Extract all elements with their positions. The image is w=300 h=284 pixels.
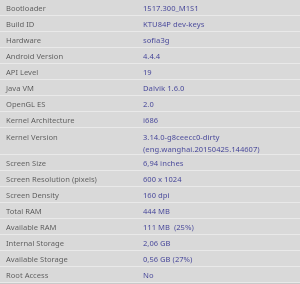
- staticText: Kernel Architecture: [6, 115, 75, 125]
- staticText: Bootloader: [6, 3, 46, 13]
- button[interactable]: Screen Size: [0, 155, 300, 171]
- staticText: 0,56 GB (27%): [143, 254, 193, 264]
- button[interactable]: Build ID: [0, 16, 300, 32]
- staticText: Android Version: [6, 51, 64, 61]
- staticText: Available RAM: [6, 222, 57, 232]
- button[interactable]: Kernel Architecture: [0, 112, 300, 128]
- button[interactable]: Android Version: [0, 48, 300, 64]
- staticText: Kernel Version: [6, 132, 58, 142]
- button[interactable]: Available Storage: [0, 251, 300, 267]
- staticText: 3.14.0-g8ceecc0-dirty: [143, 132, 220, 142]
- button[interactable]: Root Access: [0, 267, 300, 283]
- staticText: sofia3g: [143, 35, 170, 45]
- button[interactable]: Kernel Version: [0, 128, 300, 155]
- staticText: Screen Density: [6, 190, 59, 200]
- button[interactable]: Bootloader: [0, 0, 300, 16]
- staticText: Hardware: [6, 35, 42, 45]
- button[interactable]: Internal Storage: [0, 235, 300, 251]
- button[interactable]: Hardware: [0, 32, 300, 48]
- button[interactable]: Screen Density: [0, 187, 300, 203]
- staticText: Build ID: [6, 19, 35, 29]
- staticText: 6,94 inches: [143, 158, 184, 168]
- staticText: 4.4.4: [143, 51, 161, 61]
- staticText: 111 MB (25%): [143, 222, 194, 232]
- button[interactable]: Available RAM: [0, 219, 300, 235]
- staticText: Dalvik 1.6.0: [143, 83, 185, 93]
- staticText: Internal Storage: [6, 238, 65, 248]
- staticText: 444 MB: [143, 206, 170, 216]
- button[interactable]: API Level: [0, 64, 300, 80]
- staticText: 19: [143, 67, 152, 77]
- staticText: KTU84P dev-keys: [143, 19, 205, 29]
- staticText: OpenGL ES: [6, 99, 46, 109]
- staticText: Available Storage: [6, 254, 68, 264]
- staticText: Screen Size: [6, 158, 47, 168]
- staticText: Screen Resolution (pixels): [6, 174, 97, 184]
- staticText: Java VM: [6, 83, 34, 93]
- staticText: Total RAM: [6, 206, 42, 216]
- button[interactable]: Screen Resolution (pixels): [0, 171, 300, 187]
- button[interactable]: OpenGL ES: [0, 96, 300, 112]
- staticText: 2.0: [143, 99, 154, 109]
- button[interactable]: Total RAM: [0, 203, 300, 219]
- button[interactable]: Java VM: [0, 80, 300, 96]
- staticText: 600 x 1024: [143, 174, 182, 184]
- staticText: 2,06 GB: [143, 238, 171, 248]
- staticText: 1517.300_M1S1: [143, 3, 199, 13]
- staticText: API Level: [6, 67, 39, 77]
- staticText: No: [143, 270, 154, 280]
- staticText: (eng.wanghai.20150425.144607): [143, 144, 260, 154]
- staticText: 160 dpi: [143, 190, 170, 200]
- staticText: Root Access: [6, 270, 49, 280]
- staticText: i686: [143, 115, 159, 125]
